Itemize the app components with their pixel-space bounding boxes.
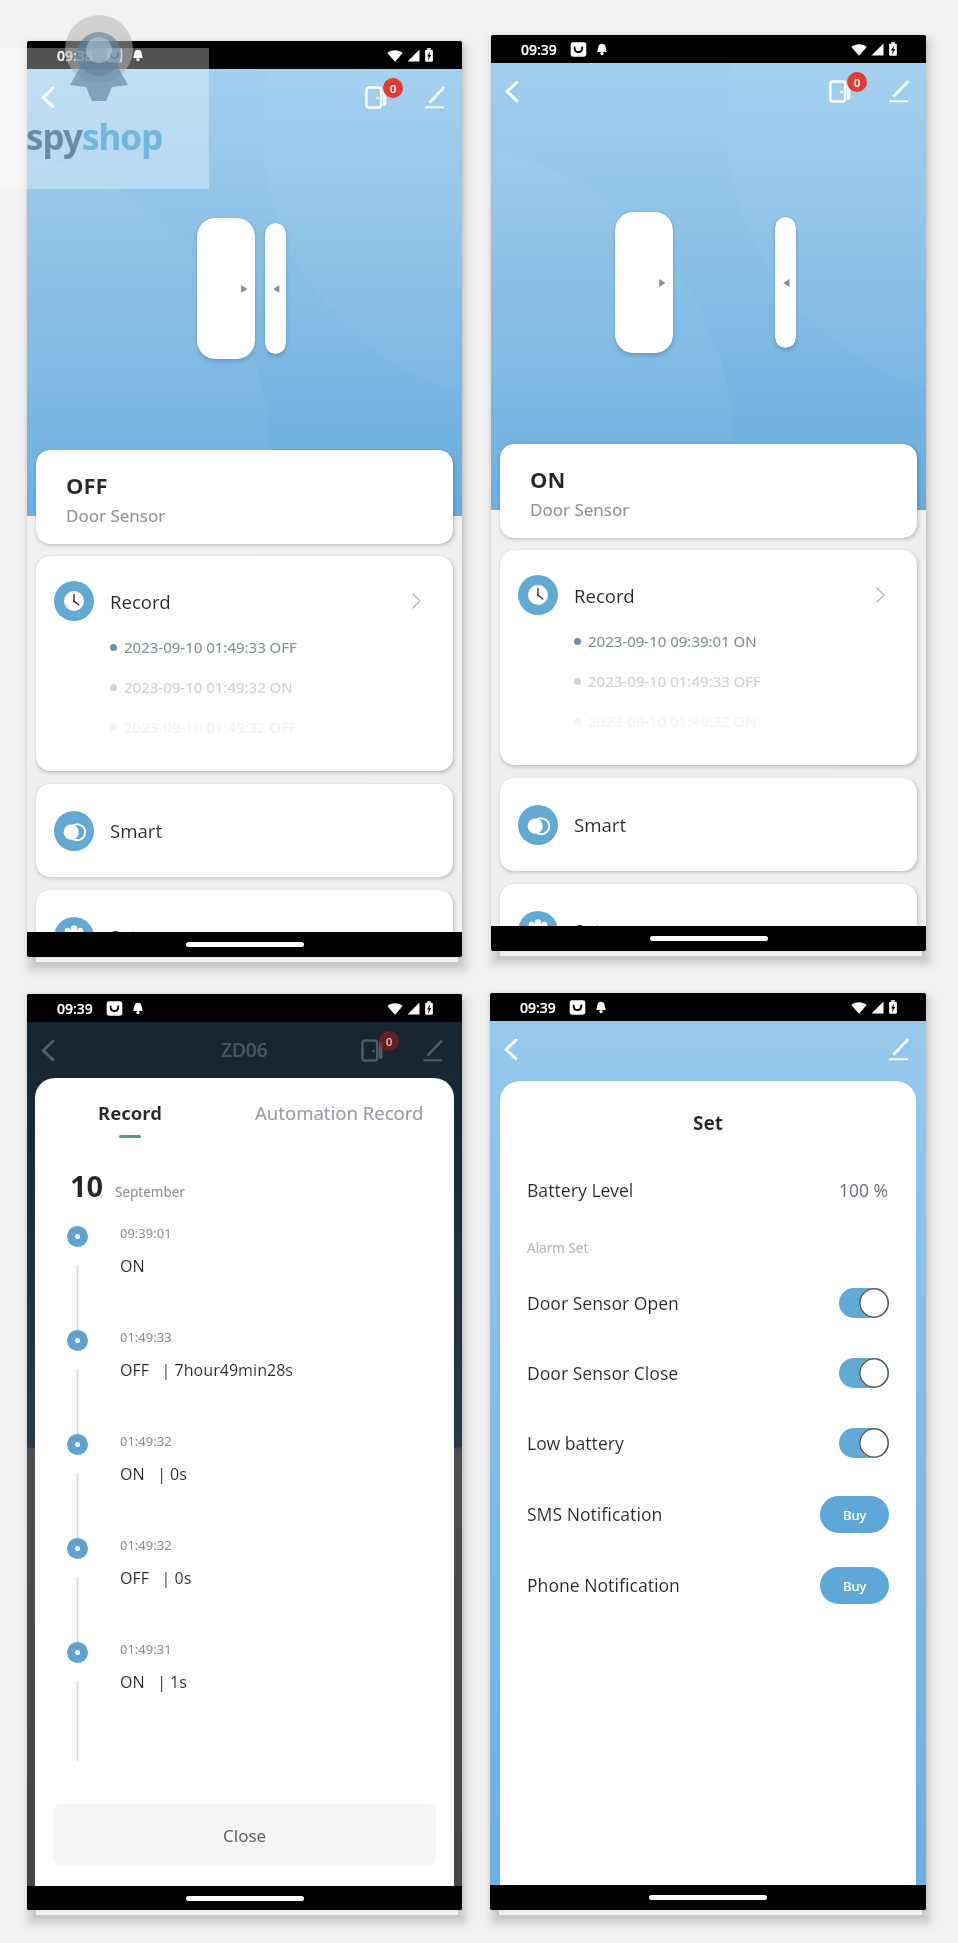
staticText: Low battery (527, 1431, 624, 1455)
button[interactable]: Close (53, 1804, 436, 1866)
button[interactable]: Record (36, 556, 453, 771)
button[interactable]: Back (27, 71, 74, 123)
staticText: Close (223, 1824, 267, 1847)
staticText: spy (26, 113, 82, 161)
button[interactable]: ON (500, 444, 917, 538)
button[interactable]: Edit (412, 75, 456, 119)
button[interactable]: Door Sensor Close switch, on (839, 1358, 889, 1388)
staticText: 2023-09-10 01:49:32 OFF (124, 717, 297, 737)
staticText: OFF | 0s (120, 1567, 192, 1589)
staticText: Buy (843, 1506, 867, 1524)
button[interactable]: Buy (820, 1496, 889, 1533)
staticText: Smart (110, 818, 163, 843)
staticText: ON (530, 464, 566, 494)
staticText: SMS Notification (527, 1502, 663, 1526)
button[interactable]: Back (491, 65, 538, 117)
staticText: Buy (843, 1577, 867, 1595)
button[interactable]: Back (490, 1023, 537, 1075)
staticText: 09:39 (57, 999, 93, 1018)
staticText: 01:49:32 (120, 1432, 172, 1450)
staticText: Smart (574, 812, 627, 837)
button[interactable]: Low battery switch, on (839, 1428, 889, 1458)
staticText: Record (110, 589, 171, 614)
button[interactable]: Low battery (527, 1422, 889, 1464)
button[interactable]: Back (27, 1024, 74, 1076)
button[interactable]: Device list (350, 1028, 394, 1072)
staticText: Door Sensor (66, 504, 166, 527)
staticText: Record (98, 1100, 162, 1125)
staticText: 2023-09-10 01:49:33 OFF (124, 637, 297, 657)
button[interactable]: Record (500, 550, 917, 765)
staticText: 01:49:33 (120, 1328, 172, 1346)
button[interactable]: Smart (500, 778, 917, 871)
staticText: 09:39 (521, 40, 557, 59)
staticText: 0 (854, 75, 861, 90)
staticText: shop (82, 113, 163, 161)
staticText: Alarm Set (527, 1239, 589, 1257)
button[interactable]: Door Sensor Open (527, 1282, 889, 1324)
staticText: 09:38 (57, 46, 93, 65)
staticText: Phone Notification (527, 1573, 680, 1597)
staticText: Door Sensor Open (527, 1291, 679, 1315)
button[interactable]: OFF (36, 450, 453, 544)
staticText: Automation Record (255, 1100, 424, 1125)
staticText: Battery Level (527, 1178, 634, 1202)
button[interactable]: Smart (36, 784, 453, 877)
button[interactable]: Phone Notification (527, 1564, 889, 1606)
staticText: Door Sensor (530, 498, 630, 521)
button[interactable]: Record (35, 1100, 224, 1138)
staticText: OFF | 7hour49min28s (120, 1359, 294, 1381)
button[interactable]: Battery Level (527, 1173, 889, 1207)
button[interactable]: Edit (876, 1027, 920, 1071)
button[interactable]: Door Sensor Open switch, on (839, 1288, 889, 1318)
staticText: September (115, 1183, 185, 1201)
staticText: 2023-09-10 09:39:01 ON (588, 631, 757, 651)
staticText: 01:49:31 (120, 1640, 172, 1658)
button[interactable]: Edit (410, 1028, 454, 1072)
staticText: ON | 0s (120, 1463, 187, 1485)
staticText: ON (120, 1255, 145, 1277)
staticText: Set (500, 1110, 916, 1136)
staticText: 2023-09-10 01:49:33 OFF (588, 671, 761, 691)
staticText: Record (574, 583, 635, 608)
staticText: 2023-09-10 01:49:32 ON (588, 711, 757, 731)
staticText: 09:39:01 (120, 1224, 172, 1242)
staticText: OFF (66, 470, 108, 500)
button[interactable]: SMS Notification (527, 1493, 889, 1535)
staticText: ON | 1s (120, 1671, 187, 1693)
staticText: ZD06 (221, 1037, 268, 1063)
staticText: 2023-09-10 01:49:32 ON (124, 677, 293, 697)
button[interactable]: Set (500, 884, 917, 951)
button[interactable]: Device list (818, 69, 862, 113)
staticText: 01:49:32 (120, 1536, 172, 1554)
button[interactable]: Edit (876, 69, 920, 113)
button[interactable]: Device list (354, 75, 398, 119)
staticText: 0 (386, 1034, 393, 1049)
staticText: 10 (70, 1166, 104, 1205)
staticText: Door Sensor Close (527, 1361, 679, 1385)
staticText: 100 % (839, 1178, 889, 1202)
button[interactable]: Buy (820, 1567, 889, 1604)
staticText: 09:39 (520, 998, 556, 1017)
staticText: 0 (390, 81, 397, 96)
button[interactable]: Automation Record (224, 1100, 454, 1138)
staticText: Set (574, 918, 602, 943)
button[interactable]: Door Sensor Close (527, 1352, 889, 1394)
staticText: Set (110, 924, 138, 949)
button[interactable]: Set (36, 890, 453, 957)
